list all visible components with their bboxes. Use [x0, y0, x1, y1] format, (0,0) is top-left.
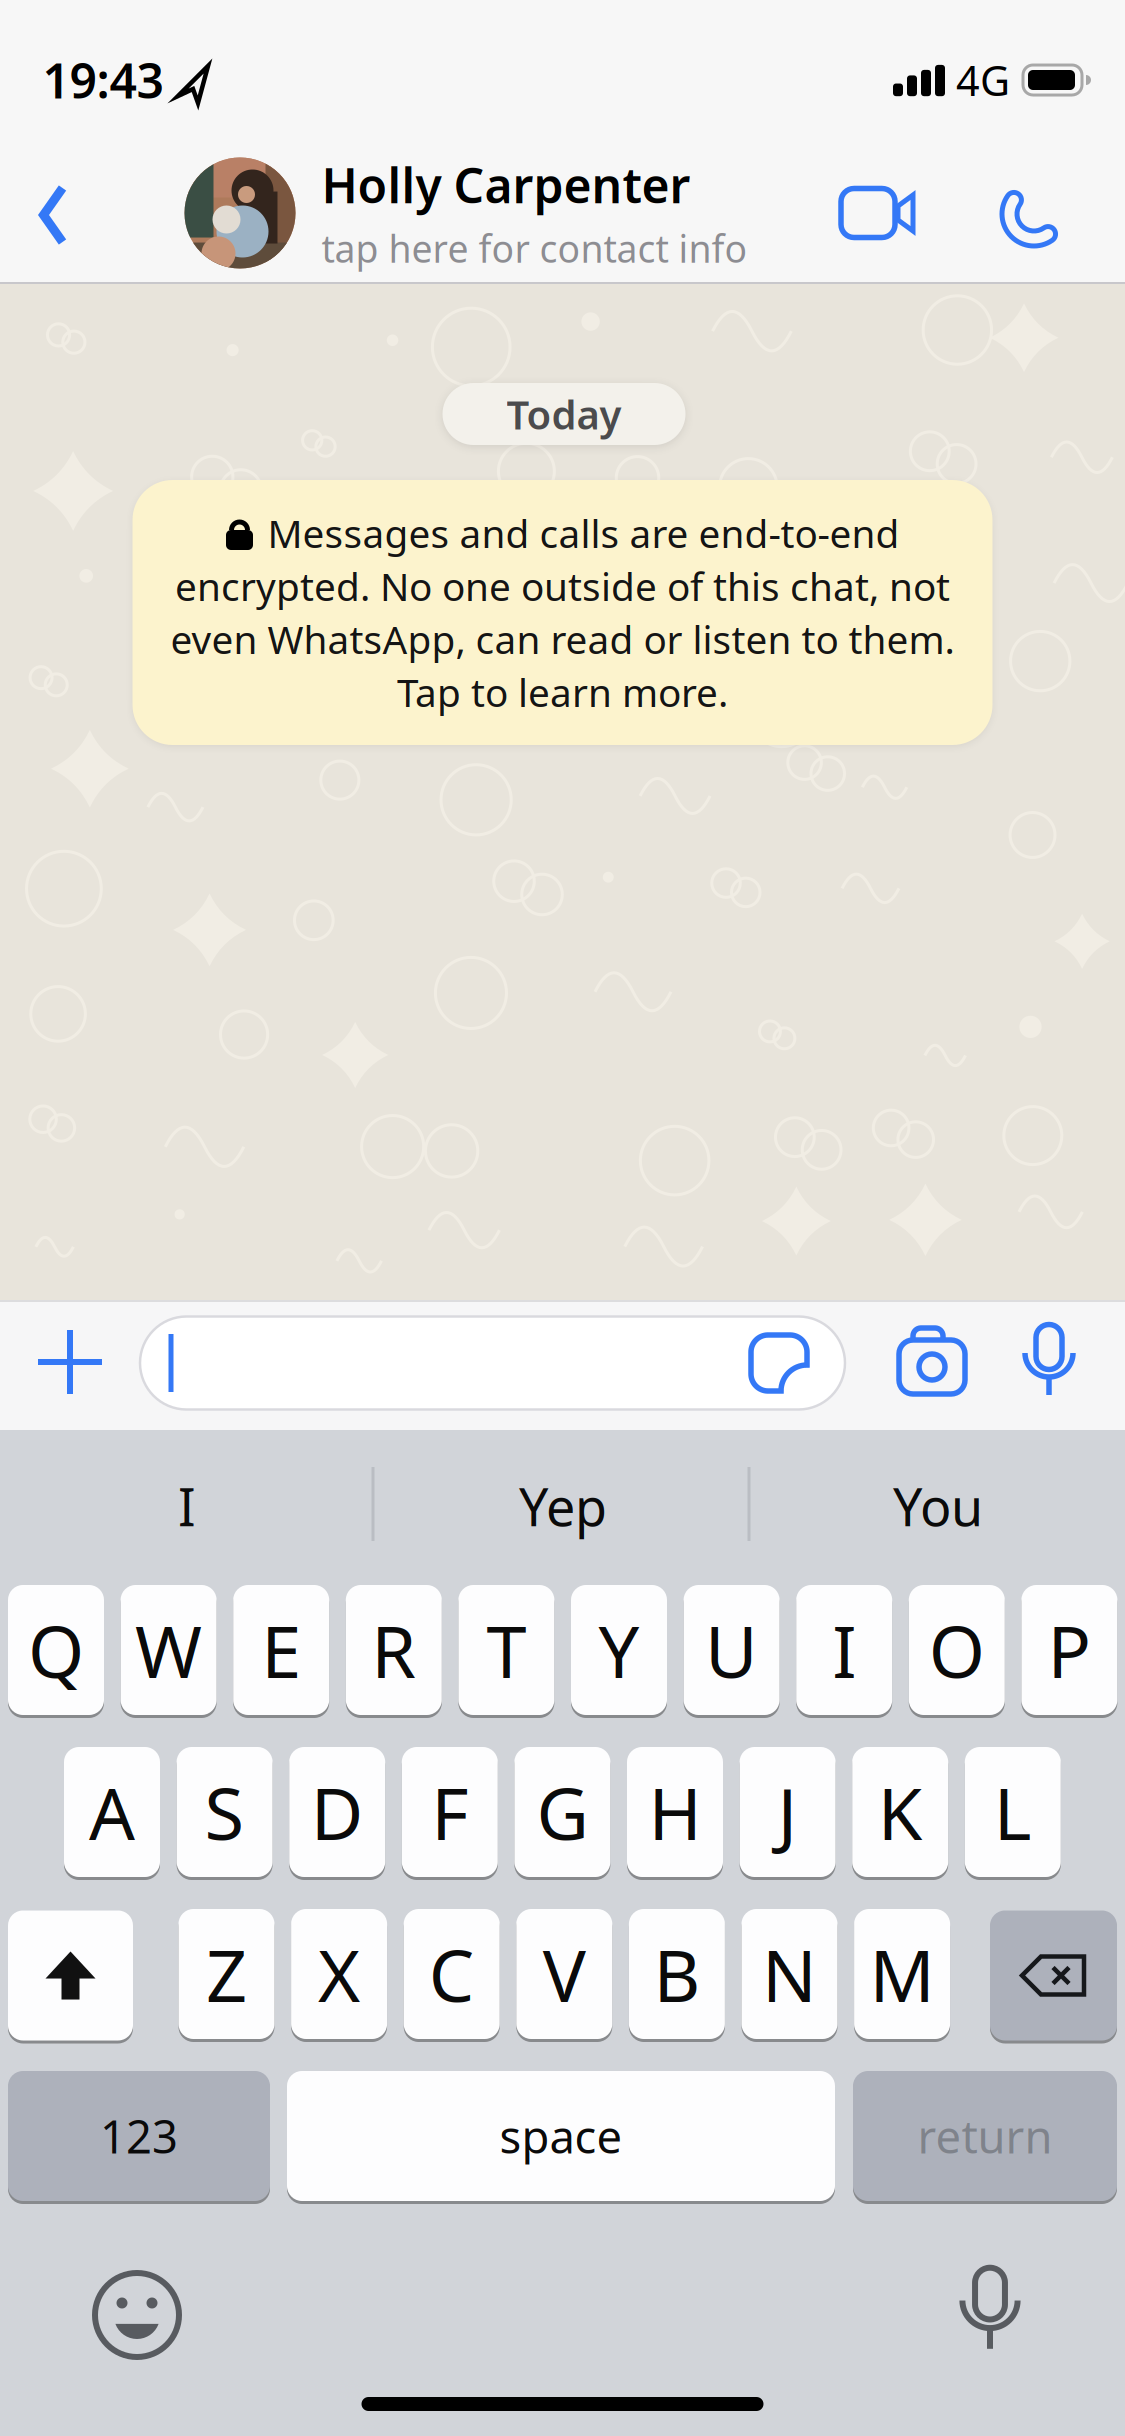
staticText: Y — [598, 1602, 639, 1698]
button[interactable]: P — [1021, 1583, 1117, 1716]
staticText: even WhatsApp, can read or listen to the… — [170, 613, 954, 665]
staticText: Z — [206, 1926, 247, 2022]
button[interactable]: Camera — [892, 1327, 972, 1397]
button[interactable]: O — [909, 1583, 1005, 1716]
staticText: Q — [28, 1602, 84, 1698]
button[interactable]: Message — [140, 1316, 845, 1409]
button[interactable]: Call — [996, 174, 1072, 250]
button[interactable]: K — [852, 1745, 948, 1878]
staticText: T — [486, 1602, 526, 1698]
button[interactable]: R — [346, 1583, 442, 1716]
staticText: L — [994, 1764, 1032, 1860]
staticText: W — [135, 1602, 202, 1698]
button[interactable]: Voice message — [1019, 1323, 1079, 1403]
staticText: Holly Carpenter — [321, 153, 690, 216]
button[interactable]: Shift — [8, 1909, 133, 2042]
staticText: D — [311, 1764, 364, 1860]
button[interactable]: return — [853, 2069, 1117, 2202]
button[interactable]: I — [796, 1583, 892, 1716]
button[interactable]: Holly Carpenter — [184, 153, 747, 273]
button[interactable]: L — [965, 1745, 1061, 1878]
staticText: S — [205, 1764, 245, 1860]
staticText: P — [1047, 1602, 1091, 1698]
staticText: 19:43 — [42, 48, 163, 112]
staticText: R — [371, 1602, 416, 1698]
button[interactable]: D — [289, 1745, 385, 1878]
staticText: O — [929, 1602, 985, 1698]
button[interactable]: I — [7, 1431, 367, 1581]
staticText: C — [429, 1926, 475, 2022]
button[interactable]: Dictation — [955, 2266, 1024, 2358]
button[interactable]: Yep — [383, 1431, 743, 1581]
button[interactable]: space — [287, 2069, 835, 2202]
button[interactable]: J — [740, 1745, 836, 1878]
staticText: B — [653, 1926, 700, 2022]
staticText: 123 — [100, 2106, 178, 2166]
staticText: J — [778, 1764, 798, 1860]
staticText: I — [832, 1602, 856, 1698]
staticText: N — [762, 1926, 817, 2022]
staticText: tap here for contact info — [321, 224, 747, 273]
button[interactable]: Back — [37, 182, 68, 248]
button[interactable]: V — [516, 1907, 612, 2040]
staticText: Messages and calls are end-to-end — [267, 507, 899, 559]
button[interactable]: W — [121, 1583, 217, 1716]
button[interactable]: T — [458, 1583, 554, 1716]
button[interactable]: B — [629, 1907, 725, 2040]
staticText: G — [536, 1764, 588, 1860]
button[interactable]: Emoji — [92, 2270, 182, 2360]
button[interactable]: Video call — [841, 171, 937, 255]
staticText: F — [431, 1764, 468, 1860]
button[interactable]: H — [627, 1745, 723, 1878]
staticText: You — [893, 1471, 983, 1541]
staticText: A — [89, 1764, 135, 1860]
button[interactable]: Delete — [990, 1909, 1117, 2042]
button[interactable]: A — [64, 1745, 160, 1878]
button[interactable]: Messages and calls are end-to-end — [132, 480, 992, 745]
staticText: Yep — [519, 1471, 607, 1541]
button[interactable]: E — [233, 1583, 329, 1716]
button[interactable]: F — [402, 1745, 498, 1878]
staticText: E — [261, 1602, 301, 1698]
staticText: H — [648, 1764, 701, 1860]
staticText: M — [870, 1926, 935, 2022]
button[interactable]: G — [514, 1745, 610, 1878]
button[interactable]: Q — [8, 1583, 104, 1716]
button[interactable]: X — [291, 1907, 387, 2040]
button[interactable]: N — [741, 1907, 837, 2040]
button[interactable]: Y — [571, 1583, 667, 1716]
staticText: Today — [506, 387, 621, 440]
staticText: X — [318, 1926, 360, 2022]
button[interactable]: Z — [178, 1907, 274, 2040]
button[interactable]: 123 — [8, 2069, 270, 2202]
button[interactable]: C — [404, 1907, 500, 2040]
staticText: Tap to learn more. — [397, 666, 728, 718]
staticText: V — [543, 1926, 586, 2022]
button[interactable]: You — [758, 1431, 1118, 1581]
staticText: I — [178, 1471, 196, 1541]
staticText: 4G — [956, 53, 1010, 107]
staticText: space — [499, 2106, 622, 2166]
staticText: return — [917, 2106, 1052, 2166]
staticText: K — [878, 1764, 923, 1860]
button[interactable]: Attach — [37, 1330, 103, 1394]
staticText: U — [705, 1602, 758, 1698]
button[interactable]: M — [854, 1907, 950, 2040]
button[interactable]: S — [177, 1745, 273, 1878]
staticText: encrypted. No one outside of this chat, … — [175, 560, 950, 612]
button[interactable]: U — [684, 1583, 780, 1716]
